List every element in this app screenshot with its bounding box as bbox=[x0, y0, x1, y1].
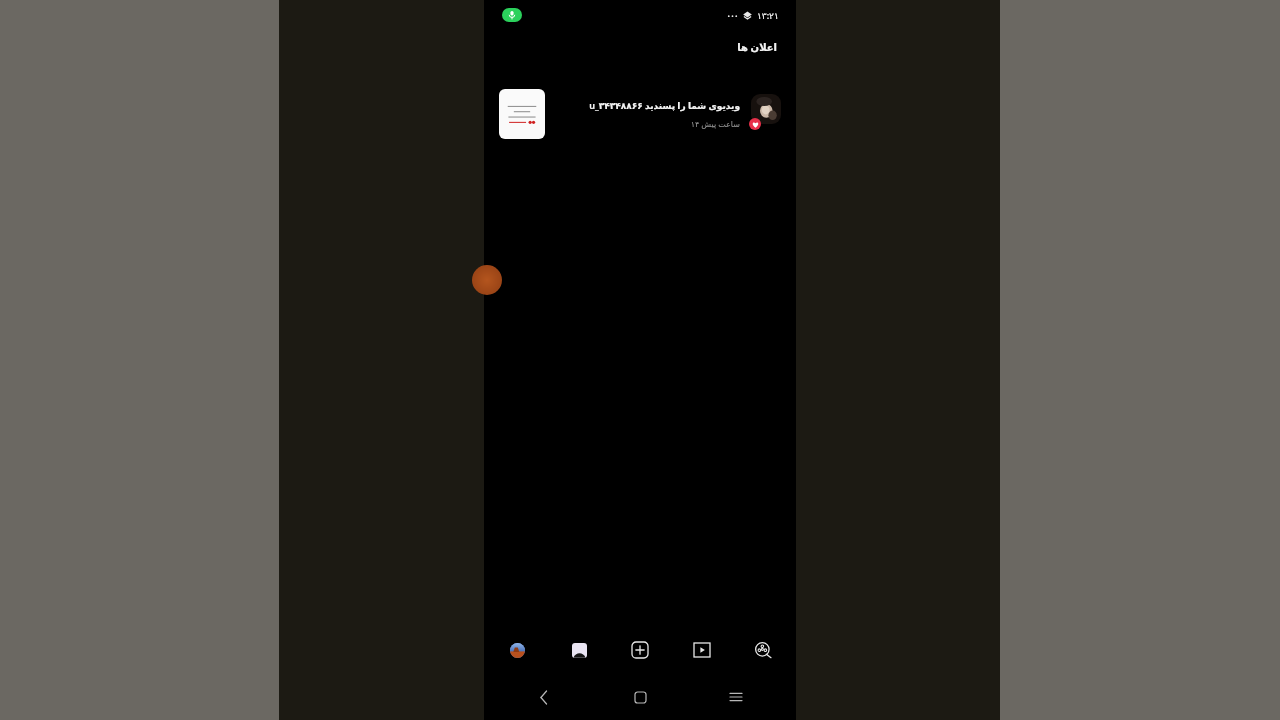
button[interactable]: Floating bubble bbox=[472, 265, 502, 295]
staticText: اعلان ها bbox=[737, 40, 777, 54]
button[interactable]: u_۳۴۳۴۸۸۶۶ ویدیوی شما را پسندید bbox=[484, 84, 796, 144]
button[interactable]: Reels bbox=[748, 635, 778, 665]
staticText: u_۳۴۳۴۸۸۶۶ ویدیوی شما را پسندید bbox=[589, 99, 740, 111]
button[interactable]: Videos bbox=[687, 635, 717, 665]
button[interactable]: Back bbox=[527, 680, 561, 714]
staticText: ۱۳:۲۱ bbox=[757, 9, 779, 21]
button[interactable]: Home bbox=[623, 680, 657, 714]
button[interactable]: Inbox bbox=[564, 635, 594, 665]
button[interactable]: Recording bbox=[502, 8, 522, 22]
button[interactable]: Recents bbox=[719, 680, 753, 714]
button[interactable]: Add bbox=[625, 635, 655, 665]
button[interactable]: Profile bbox=[502, 635, 532, 665]
staticText: ۱۴ ساعت پیش bbox=[690, 118, 740, 129]
